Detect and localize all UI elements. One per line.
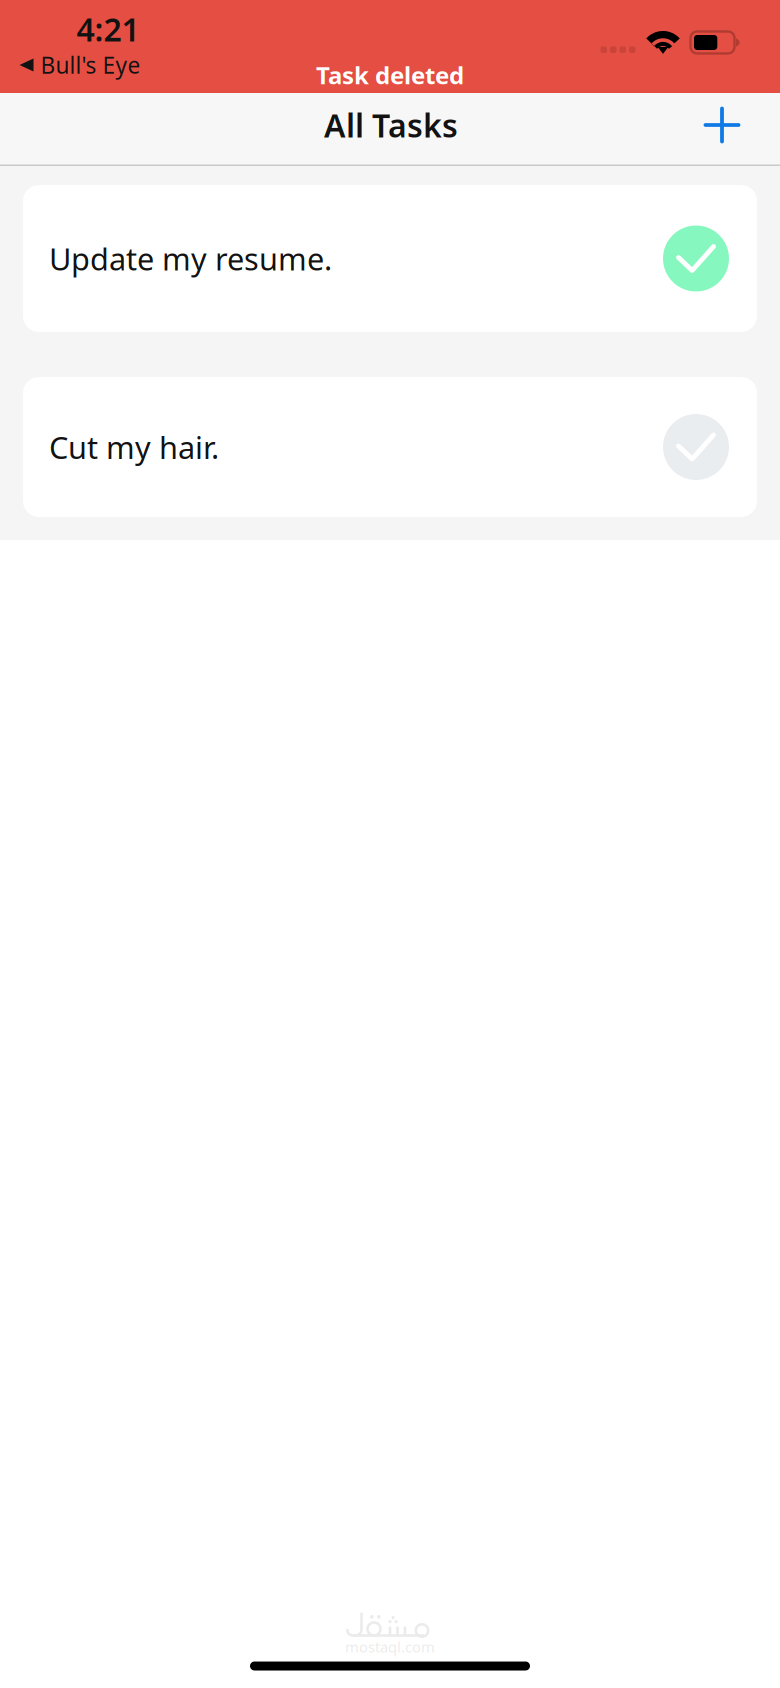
button[interactable]: Add task [684, 89, 760, 161]
staticText: All Tasks [324, 104, 458, 146]
staticText: Cut my hair. [49, 427, 219, 467]
button[interactable]: Bull's Eye [19, 50, 140, 80]
staticText: Update my resume. [49, 238, 332, 279]
staticText: mostaql.com [345, 1637, 435, 1656]
staticText: Task deleted [316, 59, 464, 91]
staticText: 4:21 [76, 8, 139, 50]
staticText: Bull's Eye [40, 50, 140, 80]
button[interactable]: Cut my hair. [23, 377, 757, 517]
button[interactable]: Update my resume. [23, 185, 757, 332]
